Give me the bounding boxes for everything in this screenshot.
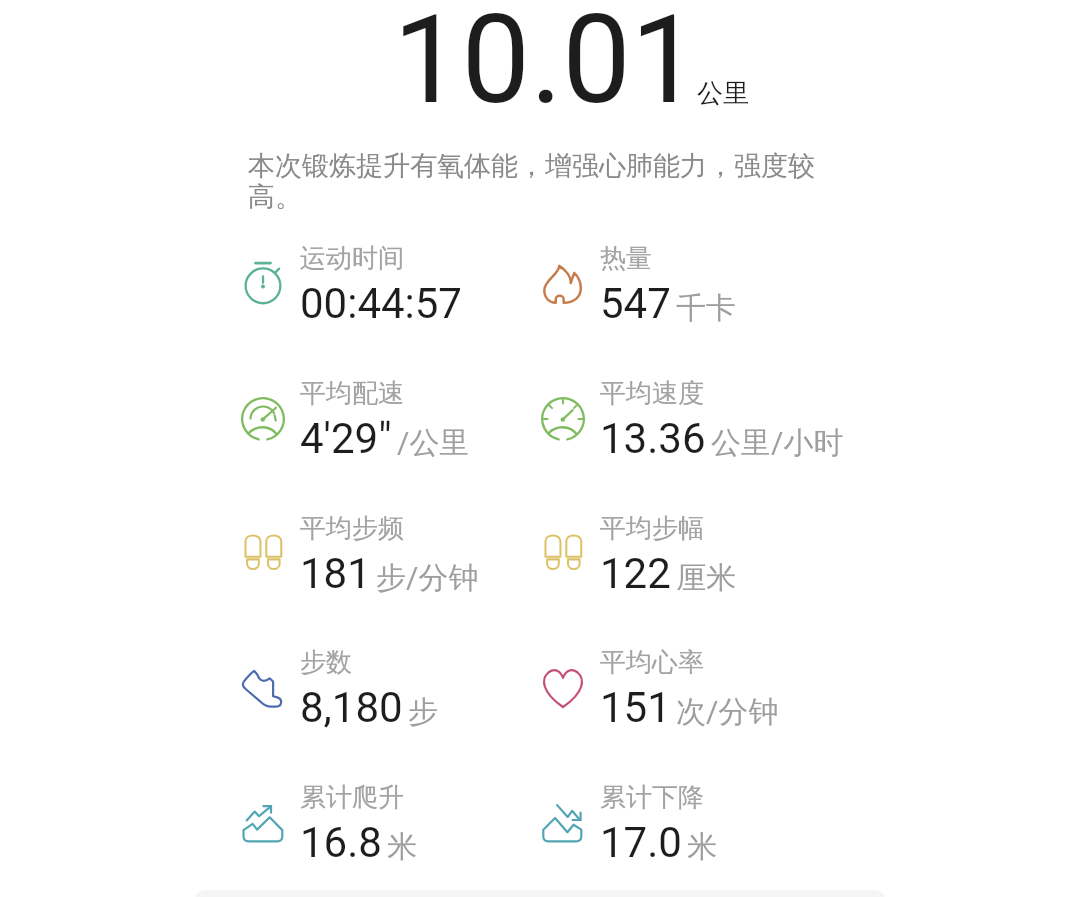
button[interactable]: Average pace	[241, 372, 529, 484]
button[interactable]: Average speed	[541, 372, 829, 484]
staticText: 平均速度	[600, 377, 704, 410]
staticText: 运动时间	[300, 242, 404, 275]
staticText: 8,180	[300, 683, 403, 732]
staticText: 米	[687, 828, 717, 866]
staticText: 4'29"	[300, 414, 392, 463]
staticText: 181	[300, 549, 371, 598]
staticText: 10.01	[393, 0, 700, 132]
staticText: 平均心率	[600, 646, 704, 679]
button[interactable]: Average stride	[541, 507, 829, 619]
button[interactable]: Average cadence	[241, 507, 529, 619]
staticText: 累计下降	[600, 781, 704, 814]
staticText: 厘米	[676, 559, 736, 597]
staticText: 千卡	[676, 289, 736, 327]
staticText: 13.36	[600, 414, 706, 463]
staticText: 累计爬升	[300, 781, 404, 814]
staticText: 米	[387, 828, 417, 866]
staticText: 本次锻炼提升有氧体能，增强心肺能力，强度较高。	[248, 149, 834, 214]
staticText: 步数	[300, 646, 352, 679]
staticText: 平均配速	[300, 377, 404, 410]
staticText: 17.0	[600, 818, 682, 867]
staticText: 热量	[600, 242, 652, 275]
button[interactable]: Calories	[541, 237, 829, 349]
button[interactable]: Duration	[241, 237, 529, 349]
staticText: 547	[600, 279, 671, 328]
staticText: 步/分钟	[376, 559, 479, 597]
staticText: 151	[600, 683, 671, 732]
button[interactable]: Total ascent	[241, 776, 529, 888]
staticText: 00:44:57	[300, 279, 462, 328]
staticText: 平均步频	[300, 512, 404, 545]
button[interactable]: Steps	[241, 641, 529, 753]
staticText: 16.8	[300, 818, 382, 867]
staticText: /公里	[397, 424, 470, 462]
staticText: 公里	[697, 77, 749, 110]
staticText: 122	[600, 549, 671, 598]
staticText: 平均步幅	[600, 512, 704, 545]
staticText: 公里/小时	[711, 424, 844, 462]
button[interactable]: Total descent	[541, 776, 829, 888]
staticText: 步	[408, 693, 438, 731]
button[interactable]: Average heart rate	[541, 641, 829, 753]
staticText: 次/分钟	[676, 693, 779, 731]
